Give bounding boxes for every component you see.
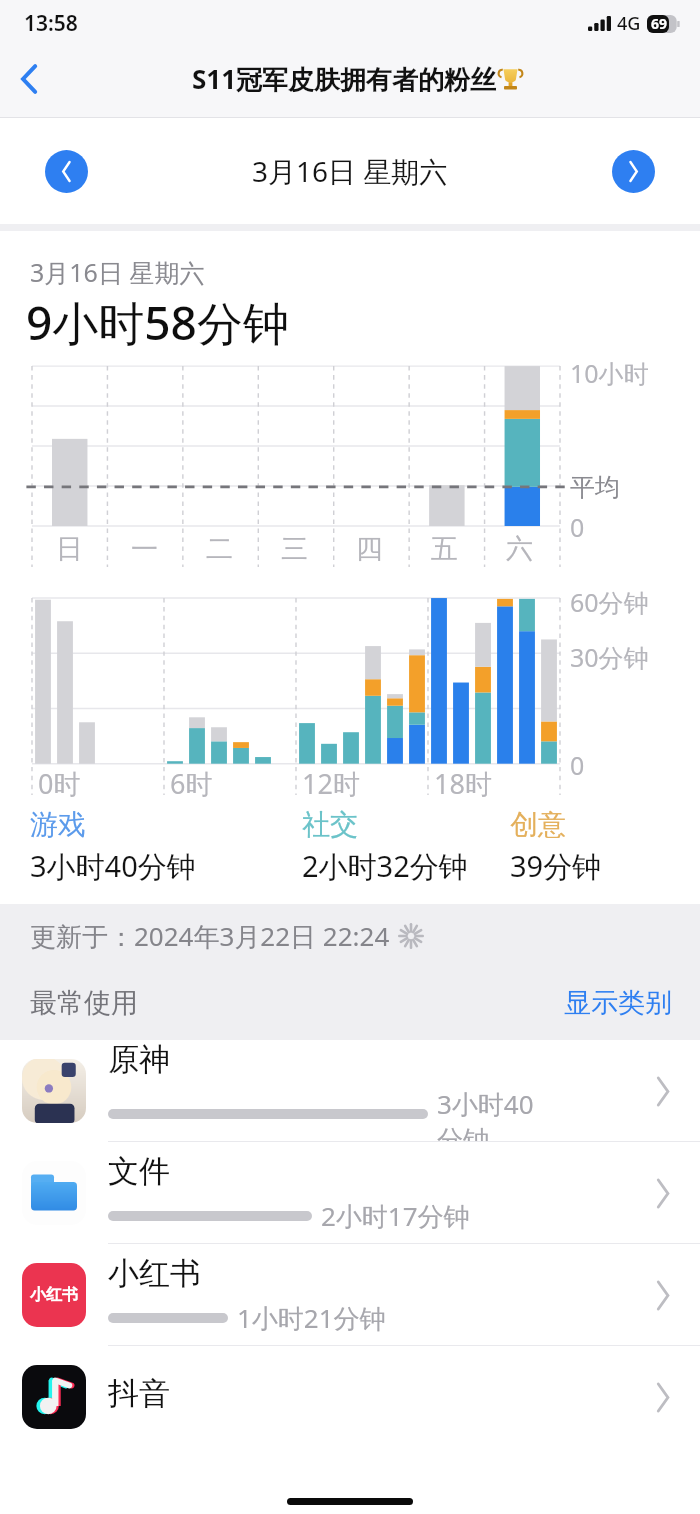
- staticText: 6时: [170, 765, 213, 802]
- other: Open 抖音: [644, 1379, 680, 1415]
- staticText: S11冠军皮肤拥有者的粉丝: [192, 61, 497, 97]
- staticText: 社交: [302, 807, 358, 842]
- button[interactable]: Back: [0, 50, 58, 108]
- staticText: 更新于：2024年3月22日 22:24: [30, 918, 390, 954]
- staticText: 60分钟: [570, 585, 649, 619]
- staticText: 平均: [570, 472, 620, 503]
- button[interactable]: 文件: [0, 1142, 700, 1243]
- staticText: 3月16日 星期六: [252, 152, 448, 190]
- other: Open 文件: [644, 1175, 680, 1211]
- staticText: 69: [651, 14, 668, 33]
- staticText: 2小时32分钟: [302, 846, 468, 886]
- staticText: 一: [131, 532, 158, 566]
- staticText: 六: [506, 532, 533, 566]
- staticText: 二: [206, 532, 233, 566]
- staticText: 游戏: [30, 807, 86, 842]
- staticText: 12时: [302, 765, 360, 802]
- staticText: 显示类别: [564, 986, 672, 1020]
- staticText: 3月16日 星期六: [30, 255, 205, 289]
- staticText: 最常使用: [30, 986, 138, 1020]
- staticText: 日: [56, 532, 83, 566]
- other: Open 原神: [644, 1073, 680, 1109]
- staticText: 四: [356, 532, 383, 566]
- staticText: 五: [431, 532, 458, 566]
- staticText: 13:58: [24, 9, 78, 38]
- button[interactable]: 原神: [0, 1040, 700, 1141]
- button[interactable]: 显示类别: [564, 986, 672, 1020]
- staticText: 0: [570, 510, 585, 544]
- button[interactable]: Previous day: [45, 150, 88, 193]
- staticText: 创意: [510, 807, 566, 842]
- button[interactable]: 小红书: [0, 1244, 700, 1345]
- button[interactable]: 抖音: [0, 1346, 700, 1447]
- staticText: 2小时17分钟: [321, 1198, 470, 1234]
- staticText: 39分钟: [510, 846, 602, 886]
- staticText: 小红书: [30, 1285, 78, 1305]
- staticText: 30分钟: [570, 640, 649, 674]
- staticText: 10小时: [570, 356, 649, 390]
- staticText: 1小时21分钟: [237, 1300, 386, 1336]
- staticText: 抖音: [108, 1374, 170, 1413]
- staticText: 0: [570, 748, 585, 782]
- staticText: 18时: [434, 765, 492, 802]
- staticText: 3小时40分钟: [437, 1086, 558, 1141]
- staticText: 原神: [108, 1040, 170, 1079]
- staticText: 三: [281, 532, 308, 566]
- staticText: 4G: [617, 11, 641, 36]
- staticText: 9小时58分钟: [26, 291, 289, 354]
- staticText: 文件: [108, 1152, 170, 1191]
- other: Open 小红书: [644, 1277, 680, 1313]
- button[interactable]: Next day: [612, 150, 655, 193]
- staticText: 0时: [38, 765, 81, 802]
- staticText: 小红书: [108, 1254, 201, 1293]
- staticText: 3小时40分钟: [30, 846, 196, 886]
